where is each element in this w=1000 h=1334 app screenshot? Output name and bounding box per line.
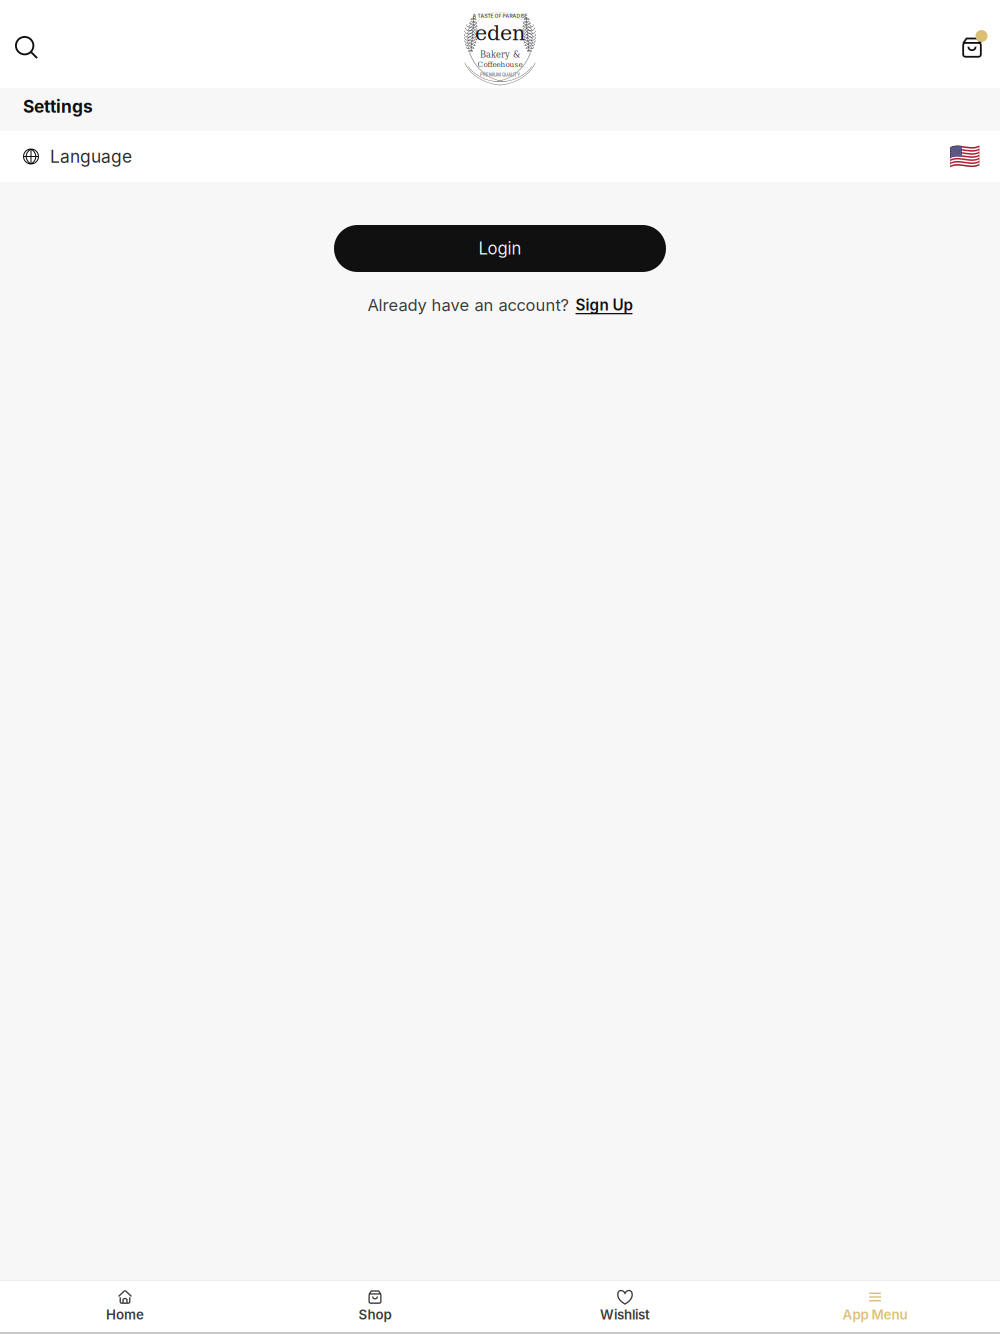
staticText: A TASTE OF PARADISE bbox=[472, 13, 527, 19]
staticText: Language bbox=[50, 146, 132, 167]
button[interactable]: Cart bbox=[948, 0, 1000, 88]
staticText: eden bbox=[475, 21, 525, 45]
button[interactable]: Wishlist bbox=[500, 1279, 750, 1333]
button[interactable]: Search bbox=[0, 0, 52, 88]
button[interactable]: Sign Up bbox=[575, 296, 632, 314]
staticText: Bakery & bbox=[480, 50, 520, 59]
button[interactable]: App Menu bbox=[750, 1279, 1000, 1333]
staticText: 🇺🇸 bbox=[949, 142, 981, 171]
staticText: Coffeehouse bbox=[477, 60, 522, 69]
staticText: Sign Up bbox=[575, 296, 632, 314]
staticText: Shop bbox=[358, 1306, 391, 1323]
button[interactable]: Login bbox=[334, 225, 666, 272]
button[interactable]: Shop bbox=[250, 1279, 500, 1333]
button[interactable]: Home bbox=[0, 1279, 250, 1333]
staticText: Home bbox=[106, 1306, 144, 1323]
staticText: PREMIUM QUALITY bbox=[480, 72, 520, 77]
staticText: Login bbox=[478, 238, 521, 259]
button[interactable]: Language bbox=[0, 131, 1000, 182]
staticText: Settings bbox=[23, 96, 93, 117]
staticText: Already have an account? bbox=[367, 295, 568, 315]
button[interactable]: eden Bakery and Coffeehouse bbox=[450, 0, 550, 88]
staticText: App Menu bbox=[842, 1306, 907, 1323]
staticText: Wishlist bbox=[600, 1306, 650, 1323]
